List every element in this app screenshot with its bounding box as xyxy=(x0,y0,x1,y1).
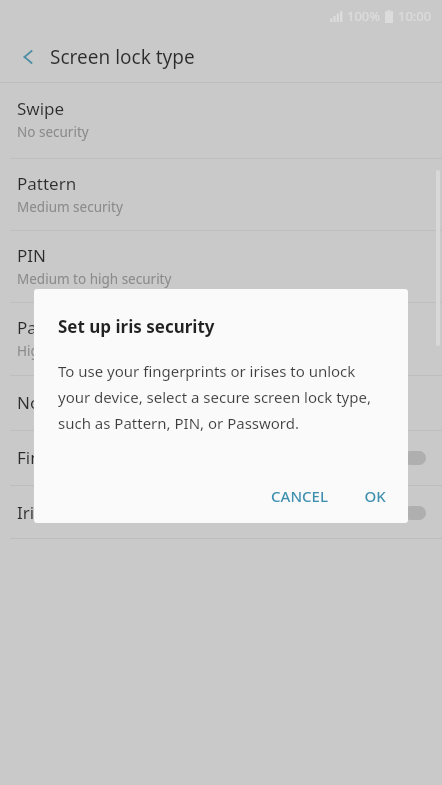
button[interactable]: Back xyxy=(8,37,48,77)
button[interactable]: Iris xyxy=(0,485,442,540)
staticText: Set up iris security xyxy=(58,315,215,338)
button[interactable]: Swipe xyxy=(0,83,442,155)
staticText: None xyxy=(17,391,61,414)
staticText: High security xyxy=(17,342,101,360)
button[interactable]: OK xyxy=(352,477,398,515)
staticText: CANCEL xyxy=(271,486,328,506)
staticText: Medium security xyxy=(17,198,123,216)
staticText: Pattern xyxy=(17,172,77,195)
button[interactable]: Password xyxy=(0,302,442,374)
staticText: 10:00 xyxy=(398,7,432,25)
staticText: Screen lock type xyxy=(50,44,195,70)
staticText: Medium to high security xyxy=(17,270,172,288)
button[interactable]: Pattern xyxy=(0,158,442,230)
staticText: Password xyxy=(17,316,94,339)
staticText: 100% xyxy=(347,7,381,25)
staticText: Swipe xyxy=(17,97,65,120)
button[interactable]: CANCEL xyxy=(259,477,340,515)
staticText: Fingerprints xyxy=(17,446,115,469)
staticText: PIN xyxy=(17,244,46,267)
staticText: Iris xyxy=(17,501,43,524)
button[interactable]: None xyxy=(0,375,442,430)
button[interactable]: Fingerprints xyxy=(0,430,442,485)
button[interactable]: PIN xyxy=(0,230,442,302)
staticText: OK xyxy=(364,486,386,506)
staticText: No security xyxy=(17,123,89,141)
staticText: To use your fingerprints or irises to un… xyxy=(58,361,384,434)
